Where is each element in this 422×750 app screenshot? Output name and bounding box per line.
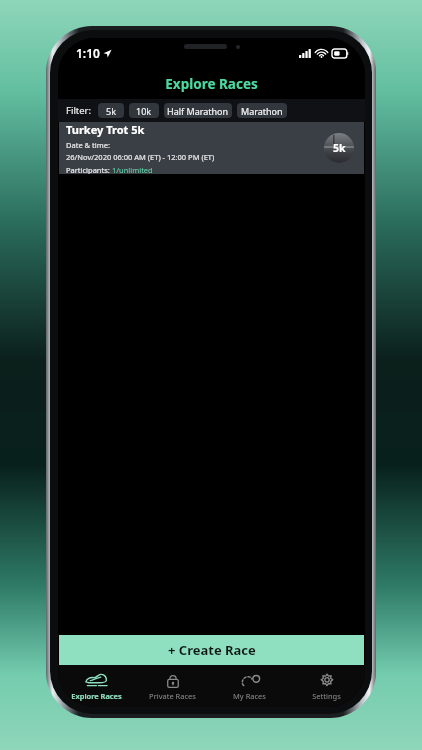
staticText: My Races [233,691,266,701]
staticText: 1:10 [76,45,100,61]
staticText: Explore Races [71,691,122,701]
button[interactable]: 10k [129,103,159,118]
staticText: Half Marathon [167,105,229,117]
staticText: Participants: [66,165,112,174]
staticText: Explore Races [165,75,258,93]
staticText: Private Races [149,691,196,701]
button[interactable]: My Races [211,665,288,707]
staticText: 1/unlimited [112,165,153,174]
button[interactable]: Half Marathon [164,103,232,118]
button[interactable]: + Create Race [59,635,364,665]
staticText: + Create Race [168,641,256,659]
staticText: 10k [136,105,152,117]
staticText: Settings [312,691,341,701]
staticText: Turkey Trot 5k [66,122,145,137]
button[interactable]: Private Races [134,665,211,707]
staticText: Marathon [241,105,283,117]
staticText: 5k [333,141,346,155]
staticText: Filter: [66,104,92,117]
staticText: Date & time: [66,140,110,150]
button[interactable]: Turkey Trot 5k [59,122,364,174]
staticText: 5k [106,105,116,117]
button[interactable]: Explore Races [58,665,134,707]
button[interactable]: Marathon [237,103,287,118]
staticText: 26/Nov/2020 06:00 AM (ET) - 12:00 PM (ET… [66,152,215,162]
button[interactable]: Settings [288,665,365,707]
button[interactable]: 5k [98,103,124,118]
